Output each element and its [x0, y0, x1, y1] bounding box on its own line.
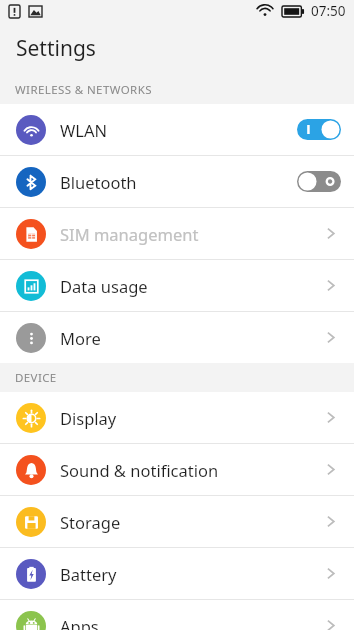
staticText: Display: [60, 407, 117, 429]
button[interactable]: Switch on: [297, 119, 341, 140]
button[interactable]: Bluetooth: [0, 156, 354, 207]
staticText: WLAN: [60, 119, 108, 141]
button[interactable]: Switch off: [297, 171, 341, 192]
staticText: Data usage: [60, 275, 148, 297]
button[interactable]: Sound & notification: [0, 444, 354, 495]
button[interactable]: SIM management: [0, 208, 354, 259]
staticText: Settings: [16, 34, 96, 63]
button[interactable]: Data usage: [0, 260, 354, 311]
button[interactable]: Apps: [0, 600, 354, 630]
button[interactable]: WLAN: [0, 104, 354, 155]
staticText: Bluetooth: [60, 171, 137, 193]
staticText: More: [60, 327, 101, 349]
button[interactable]: Display: [0, 392, 354, 443]
staticText: Storage: [60, 511, 121, 533]
button[interactable]: More: [0, 312, 354, 363]
staticText: Apps: [60, 615, 99, 630]
staticText: SIM management: [60, 223, 199, 245]
staticText: 07:50: [311, 2, 346, 20]
staticText: DEVICE: [15, 370, 57, 386]
staticText: WIRELESS & NETWORKS: [15, 82, 152, 98]
staticText: Sound & notification: [60, 459, 219, 481]
staticText: Battery: [60, 563, 117, 585]
button[interactable]: Storage: [0, 496, 354, 547]
button[interactable]: Battery: [0, 548, 354, 599]
